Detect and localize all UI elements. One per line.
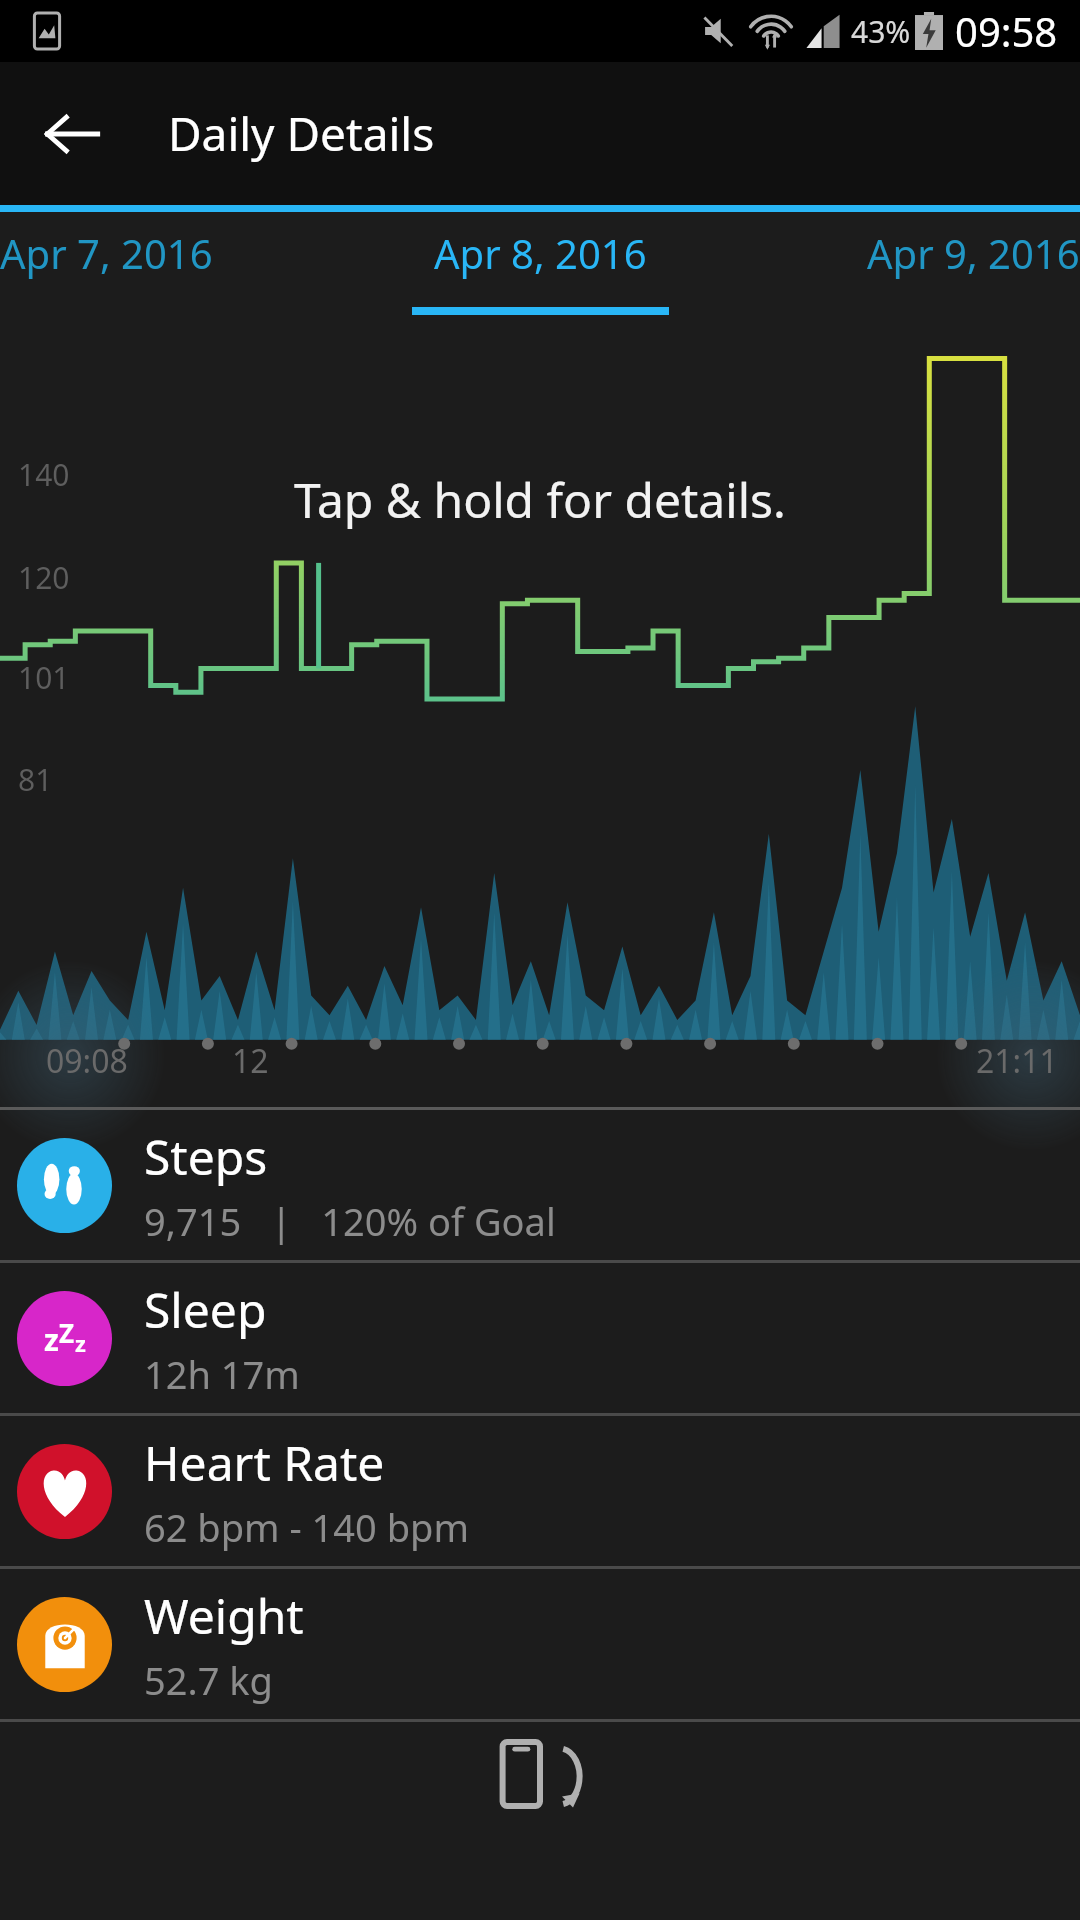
staticText: Apr 8, 2016 bbox=[434, 226, 647, 280]
button[interactable]: Apr 8, 2016 bbox=[360, 212, 720, 315]
button[interactable]: z bbox=[0, 1263, 1080, 1413]
button[interactable]: Heart Rate bbox=[0, 1416, 1080, 1566]
button[interactable]: Weight bbox=[0, 1569, 1080, 1719]
staticText: 62 bpm - 140 bpm bbox=[144, 1501, 469, 1553]
staticText: z bbox=[44, 1319, 59, 1360]
staticText: 120 bbox=[18, 557, 70, 598]
staticText: 81 bbox=[18, 759, 53, 800]
staticText: 12h 17m bbox=[144, 1348, 300, 1400]
staticText: 21:11 bbox=[976, 1039, 1058, 1083]
staticText: Tap & hold for details. bbox=[294, 467, 786, 532]
button[interactable]: Back bbox=[24, 86, 120, 182]
staticText: 9,715 | 120% of Goal bbox=[144, 1195, 556, 1247]
staticText: Z bbox=[59, 1315, 75, 1350]
staticText: z bbox=[75, 1328, 86, 1358]
staticText: 140 bbox=[18, 454, 70, 495]
staticText: 101 bbox=[18, 657, 70, 698]
staticText: 09:58 bbox=[955, 4, 1058, 58]
button[interactable]: Apr 7, 2016 bbox=[0, 212, 360, 315]
staticText: 12 bbox=[232, 1039, 269, 1083]
staticText: Heart Rate bbox=[144, 1430, 385, 1495]
staticText: Apr 7, 2016 bbox=[0, 226, 213, 280]
staticText: Sleep bbox=[144, 1277, 267, 1342]
staticText: Apr 9, 2016 bbox=[867, 226, 1080, 280]
staticText: 43% bbox=[851, 11, 911, 52]
button[interactable]: Rotate device bbox=[485, 1734, 595, 1814]
button[interactable]: Apr 9, 2016 bbox=[720, 212, 1080, 315]
staticText: Weight bbox=[144, 1583, 304, 1648]
staticText: 09:08 bbox=[46, 1039, 128, 1083]
button[interactable]: Steps bbox=[0, 1110, 1080, 1260]
staticText: Steps bbox=[144, 1124, 268, 1189]
staticText: Daily Details bbox=[168, 102, 435, 165]
staticText: 52.7 kg bbox=[144, 1654, 273, 1706]
